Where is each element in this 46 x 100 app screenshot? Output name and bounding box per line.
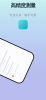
staticText: 高精度测量	[10, 2, 35, 9]
staticText: 专业工具 · 随手可用	[9, 13, 36, 17]
button[interactable]: App icon	[18, 20, 28, 29]
